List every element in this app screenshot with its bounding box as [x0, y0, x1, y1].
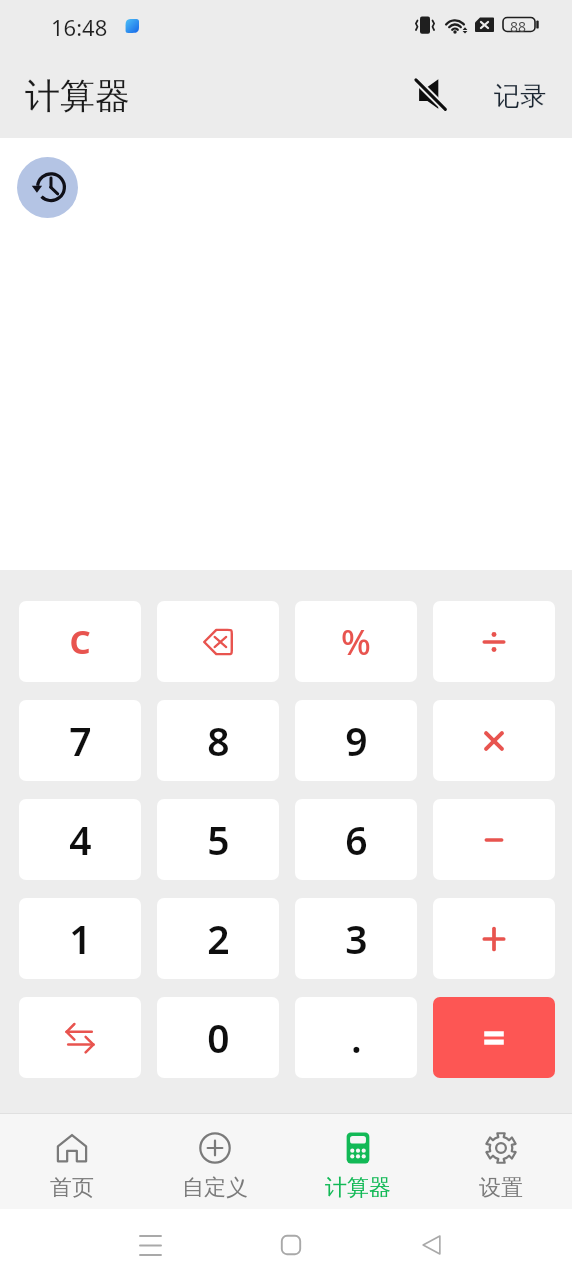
staticText: 5 [207, 813, 230, 866]
button[interactable]: divide [433, 601, 555, 682]
staticText: 88 [510, 17, 527, 36]
button[interactable]: backspace [157, 601, 279, 682]
staticText: 4 [69, 813, 92, 866]
button[interactable]: 首页 [0, 1114, 143, 1209]
button[interactable]: times [433, 700, 555, 781]
button[interactable]: C [19, 601, 141, 682]
staticText: 9 [345, 714, 368, 767]
button[interactable]: 1 [19, 898, 141, 979]
staticText: 计算器 [25, 74, 130, 118]
button[interactable]: Mute [408, 72, 452, 116]
button[interactable]: 自定义 [143, 1114, 286, 1209]
button[interactable]: 4 [19, 799, 141, 880]
staticText: 7 [69, 714, 92, 767]
button[interactable]: 2 [157, 898, 279, 979]
staticText: . [351, 1011, 362, 1064]
button[interactable]: 记录 [486, 74, 554, 119]
button[interactable]: 0 [157, 997, 279, 1078]
button[interactable]: 3 [295, 898, 417, 979]
button[interactable]: equals [433, 997, 555, 1078]
button[interactable]: 计算器 [286, 1114, 429, 1209]
staticText: % [341, 618, 371, 666]
button[interactable]: plus [433, 898, 555, 979]
staticText: 记录 [494, 80, 546, 113]
staticText: 3 [345, 912, 368, 965]
button[interactable]: 8 [157, 700, 279, 781]
button[interactable]: Recents [126, 1221, 174, 1269]
button[interactable]: 7 [19, 700, 141, 781]
button[interactable]: 设置 [429, 1114, 572, 1209]
button[interactable]: Home [267, 1221, 315, 1269]
button[interactable]: History [17, 157, 78, 218]
staticText: C [69, 619, 91, 664]
button[interactable]: swap [19, 997, 141, 1078]
staticText: 6 [345, 813, 368, 866]
button[interactable]: 5 [157, 799, 279, 880]
button[interactable]: Back [407, 1221, 455, 1269]
staticText: 设置 [479, 1174, 523, 1202]
staticText: 0 [207, 1011, 230, 1064]
button[interactable]: % [295, 601, 417, 682]
staticText: 1 [69, 912, 92, 965]
button[interactable]: minus [433, 799, 555, 880]
staticText: 自定义 [182, 1174, 248, 1202]
button[interactable]: 6 [295, 799, 417, 880]
staticText: 2 [207, 912, 230, 965]
staticText: 8 [207, 714, 230, 767]
button[interactable]: . [295, 997, 417, 1078]
staticText: 16:48 [51, 12, 108, 42]
staticText: 计算器 [325, 1174, 391, 1202]
button[interactable]: 9 [295, 700, 417, 781]
staticText: 首页 [50, 1174, 94, 1202]
